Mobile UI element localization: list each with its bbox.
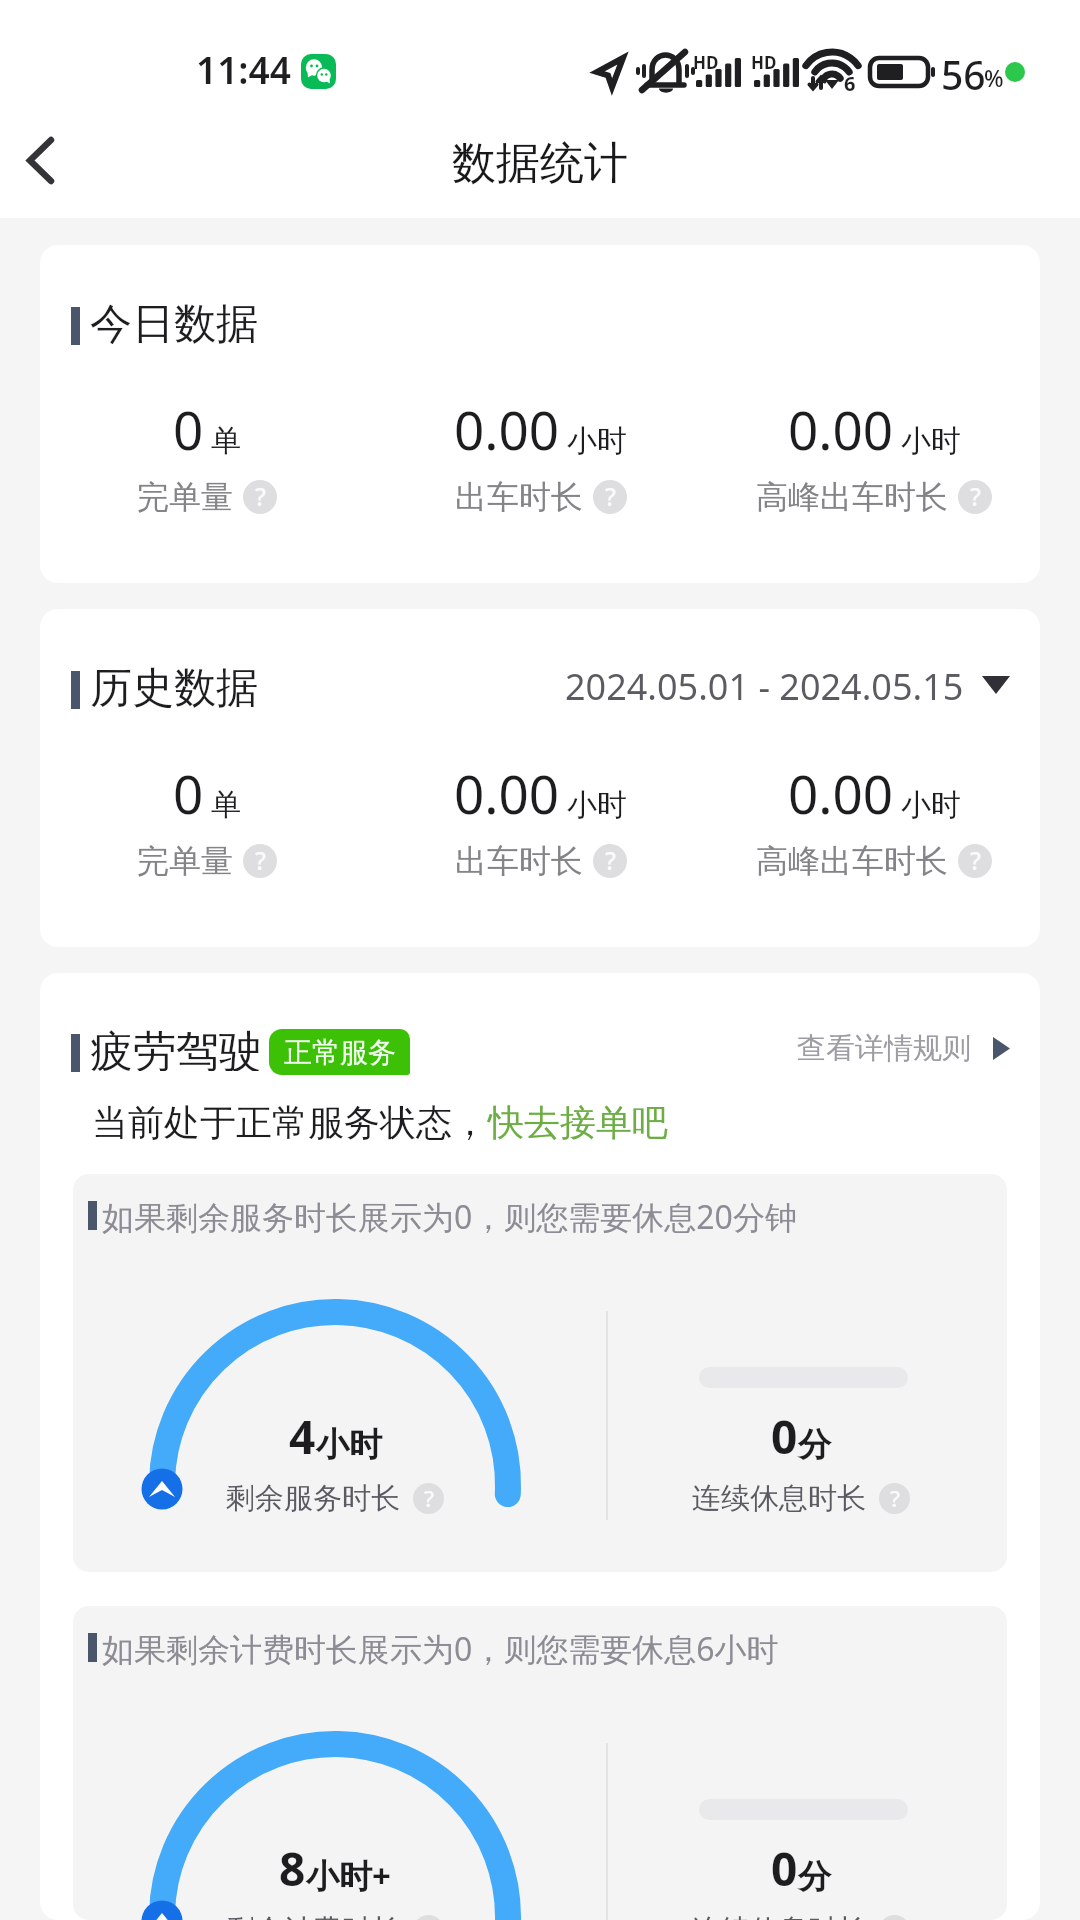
staticText: 剩余计费时长 <box>226 1912 400 1920</box>
staticText: 小时 <box>567 786 627 824</box>
staticText: ? <box>255 480 266 513</box>
staticText: 如果剩余计费时长展示为0，则您需要休息6小时 <box>102 1627 779 1671</box>
staticText: ? <box>970 480 981 513</box>
staticText: 数据统计 <box>452 136 628 191</box>
staticText: 56 <box>941 48 986 101</box>
staticText: 如果剩余服务时长展示为0，则您需要休息20分钟 <box>102 1195 797 1239</box>
button[interactable]: Back <box>0 111 104 215</box>
staticText: 小时 <box>567 422 627 460</box>
staticText: 分 <box>798 1856 831 1898</box>
staticText: ? <box>970 844 981 877</box>
button[interactable]: Help <box>413 1915 444 1920</box>
staticText: 0 <box>771 1405 798 1468</box>
button[interactable]: Help <box>879 1483 910 1514</box>
staticText: 快去接单吧 <box>488 1100 668 1145</box>
staticText: 单 <box>211 786 241 824</box>
staticText: 0.00 <box>788 393 894 465</box>
button[interactable]: Help <box>243 480 277 514</box>
staticText: 小时 <box>901 422 961 460</box>
staticText: 高峰出车时长 <box>756 477 948 517</box>
staticText: ? <box>424 1915 434 1920</box>
button[interactable]: Help <box>593 480 627 514</box>
staticText: ? <box>605 844 616 877</box>
staticText: 11:44 <box>196 44 291 94</box>
staticText: 6 <box>844 70 856 97</box>
staticText: 单 <box>211 422 241 460</box>
staticText: 正常服务 <box>284 1035 396 1070</box>
staticText: HD <box>693 51 719 74</box>
staticText: 出车时长 <box>455 841 583 881</box>
staticText: ? <box>424 1483 434 1513</box>
staticText: 0.00 <box>454 393 560 465</box>
staticText: 小时 <box>901 786 961 824</box>
staticText: 0.00 <box>788 757 894 829</box>
staticText: 0 <box>771 1837 798 1900</box>
button[interactable]: Help <box>958 844 992 878</box>
staticText: 0 <box>173 757 204 829</box>
button[interactable]: Help <box>879 1915 910 1920</box>
staticText: % <box>984 62 1004 93</box>
staticText: 0.00 <box>454 757 560 829</box>
staticText: 0 <box>173 393 204 465</box>
staticText: 连续休息时长 <box>692 1480 866 1517</box>
staticText: 当前处于正常服务状态， <box>92 1100 488 1145</box>
staticText: 小时+ <box>306 1853 391 1898</box>
staticText: 出车时长 <box>455 477 583 517</box>
staticText: 疲劳驾驶 <box>90 1025 262 1071</box>
staticText: ? <box>890 1915 900 1920</box>
button[interactable]: 2024.05.01 - 2024.05.15 <box>258 662 1010 708</box>
staticText: 2024.05.01 - 2024.05.15 <box>565 662 964 708</box>
staticText: ? <box>255 844 266 877</box>
staticText: 完单量 <box>137 841 233 881</box>
button[interactable]: Help <box>593 844 627 878</box>
button[interactable]: Help <box>958 480 992 514</box>
staticText: HD <box>751 51 777 74</box>
button[interactable]: Help <box>413 1483 444 1514</box>
staticText: ? <box>890 1483 900 1513</box>
staticText: ? <box>605 480 616 513</box>
staticText: 完单量 <box>137 477 233 517</box>
staticText: 连续休息时长 <box>692 1912 866 1920</box>
staticText: 分 <box>798 1424 831 1466</box>
staticText: 4 <box>289 1405 316 1468</box>
staticText: 高峰出车时长 <box>756 841 948 881</box>
staticText: 8 <box>279 1837 306 1900</box>
staticText: 小时 <box>316 1424 382 1466</box>
staticText: 剩余服务时长 <box>226 1480 400 1517</box>
staticText: 今日数据 <box>90 298 258 344</box>
staticText: 历史数据 <box>90 662 258 708</box>
button[interactable]: 查看详情规则 <box>410 1030 1010 1067</box>
button[interactable]: Help <box>243 844 277 878</box>
staticText: 查看详情规则 <box>797 1030 971 1067</box>
